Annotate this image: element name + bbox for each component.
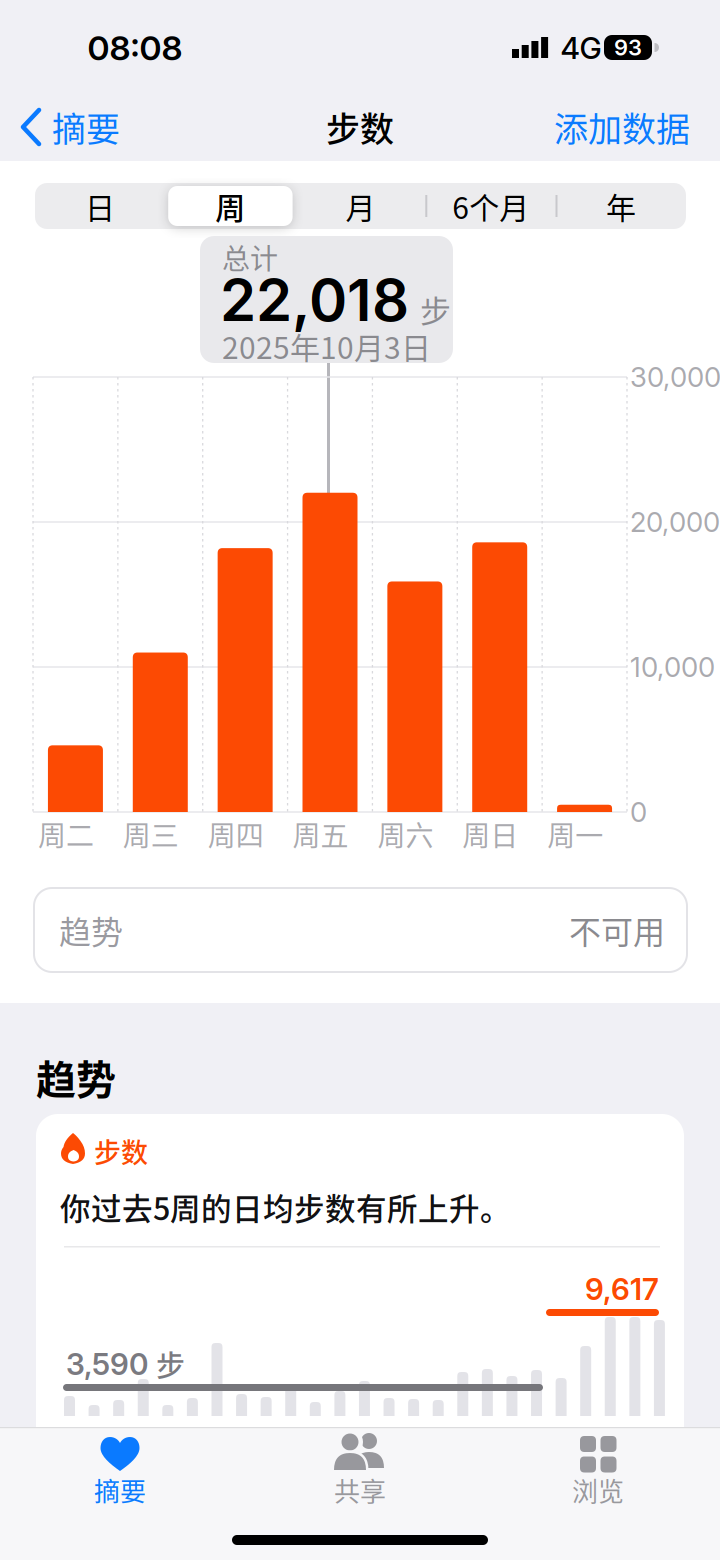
staticText: 0	[630, 795, 647, 829]
staticText: 摘要	[94, 1471, 146, 1509]
staticText: 周日	[462, 814, 518, 854]
staticText: 步	[420, 287, 451, 331]
staticText: 浏览	[572, 1471, 624, 1509]
staticText: 趋势	[36, 1048, 116, 1106]
staticText: 周五	[293, 814, 349, 854]
staticText: 步数	[94, 1131, 148, 1171]
staticText: 步	[156, 1343, 185, 1385]
staticText: 你过去5周的日均步数有所上升。	[60, 1185, 511, 1229]
staticText: 30,000	[630, 360, 720, 394]
staticText: 周一	[547, 814, 603, 854]
staticText: 2025年10月3日	[222, 324, 431, 368]
staticText: 月	[345, 184, 375, 228]
staticText: 93	[614, 34, 642, 61]
staticText: 日	[85, 184, 115, 228]
staticText: 08:08	[87, 27, 182, 68]
staticText: 3,590	[66, 1346, 148, 1382]
staticText: 周	[215, 184, 245, 228]
staticText: 周四	[208, 814, 264, 854]
staticText: 共享	[334, 1471, 386, 1509]
staticText: 总计	[222, 237, 278, 277]
staticText: 6个月	[452, 184, 529, 228]
staticText: 趋势	[59, 907, 123, 953]
staticText: 不可用	[569, 907, 665, 953]
staticText: 20,000	[630, 505, 720, 539]
staticText: 22,018	[220, 265, 409, 335]
staticText: 周二	[38, 814, 94, 854]
staticText: 添加数据	[554, 102, 690, 152]
staticText: 周六	[377, 814, 433, 854]
staticText: 步数	[326, 102, 394, 152]
staticText: 10,000	[630, 650, 715, 684]
staticText: 9,617	[585, 1271, 659, 1307]
staticText: 4G	[560, 30, 601, 66]
staticText: 摘要	[52, 102, 120, 152]
staticText: 年	[606, 184, 636, 228]
staticText: 周三	[123, 814, 179, 854]
